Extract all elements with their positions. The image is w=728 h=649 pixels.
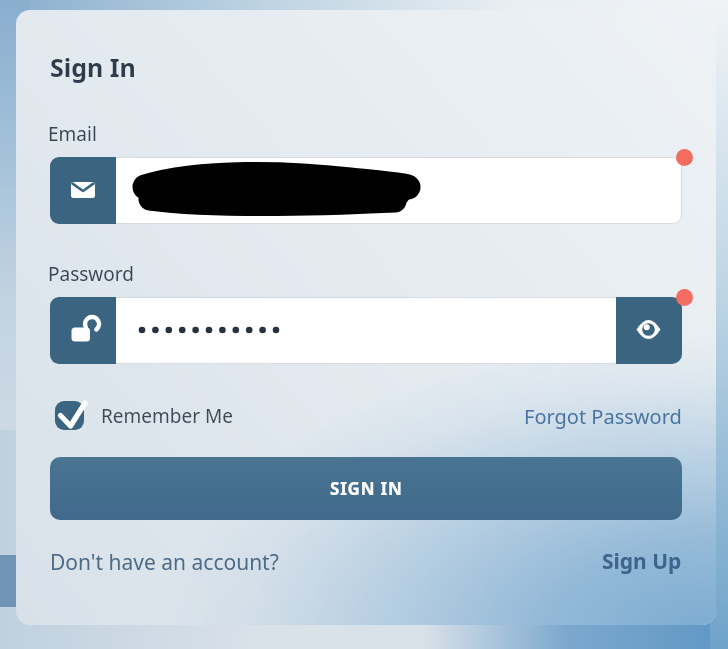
staticText: Sign In (50, 50, 136, 84)
staticText: Password (48, 261, 134, 287)
staticText: Don't have an account? (50, 548, 279, 577)
button[interactable]: Remember Me (55, 400, 235, 431)
staticText: Remember Me (101, 403, 233, 429)
button[interactable] (50, 297, 682, 364)
staticText: Email (48, 121, 97, 147)
button[interactable]: Forgot Password (500, 401, 682, 431)
staticText: Forgot Password (524, 403, 682, 430)
button[interactable]: SIGN IN (50, 457, 682, 520)
staticText: SIGN IN (330, 477, 403, 500)
staticText: Sign Up (602, 547, 682, 576)
button[interactable] (616, 297, 682, 364)
button[interactable]: Sign Up (550, 546, 682, 576)
button[interactable] (50, 157, 682, 224)
